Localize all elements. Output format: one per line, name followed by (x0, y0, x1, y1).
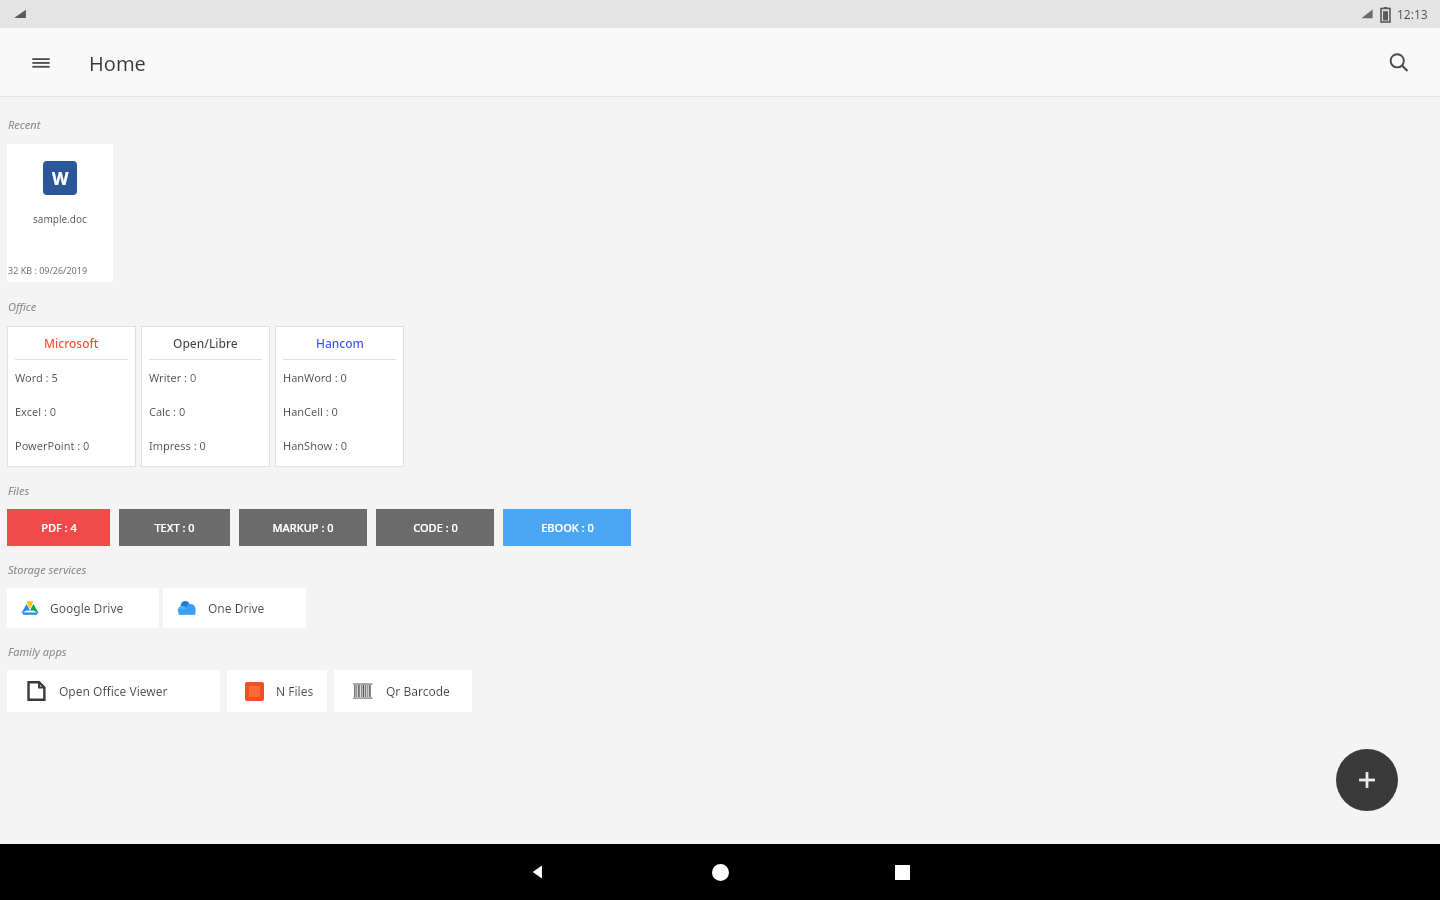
staticText: Office (8, 299, 37, 314)
staticText: Calc : 0 (149, 404, 186, 419)
button[interactable]: Recents (812, 844, 992, 900)
button[interactable]: Search (1376, 40, 1422, 86)
button[interactable]: W (7, 144, 113, 282)
staticText: Recent (8, 117, 41, 132)
button[interactable]: TEXT : 0 (119, 509, 230, 546)
staticText: Open/Libre (173, 335, 238, 351)
button[interactable]: EBOOK : 0 (503, 509, 631, 546)
staticText: Impress : 0 (149, 438, 206, 453)
button[interactable]: MARKUP : 0 (239, 509, 367, 546)
staticText: TEXT : 0 (154, 520, 195, 535)
button[interactable]: Google Drive (7, 588, 159, 628)
staticText: Open Office Viewer (59, 683, 168, 699)
staticText: HanWord : 0 (283, 370, 347, 385)
staticText: N Files (276, 683, 314, 699)
button[interactable]: PDF : 4 (7, 509, 110, 546)
button[interactable]: Back (448, 844, 628, 900)
button[interactable]: Hancom (275, 326, 404, 467)
staticText: 32 KB : 09/26/2019 (8, 264, 88, 276)
staticText: CODE : 0 (413, 520, 458, 535)
button[interactable]: One Drive (163, 588, 306, 628)
staticText: W (52, 167, 69, 189)
staticText: 12:13 (1397, 6, 1428, 22)
staticText: PDF : 4 (41, 520, 77, 535)
staticText: Family apps (8, 644, 67, 659)
button[interactable]: Qr Barcode (334, 670, 472, 712)
staticText: Excel : 0 (15, 404, 56, 419)
button[interactable]: Open Office Viewer (7, 670, 220, 712)
button[interactable]: Add (1336, 749, 1398, 811)
staticText: EBOOK : 0 (541, 520, 594, 535)
staticText: Files (8, 483, 30, 498)
button[interactable]: Open/Libre (141, 326, 270, 467)
staticText: Hancom (316, 335, 364, 351)
button[interactable]: Microsoft (7, 326, 136, 467)
staticText: PowerPoint : 0 (15, 438, 90, 453)
staticText: Storage services (8, 562, 87, 577)
button[interactable]: Home (630, 844, 810, 900)
staticText: HanShow : 0 (283, 438, 347, 453)
staticText: Word : 5 (15, 370, 58, 385)
staticText: Home (89, 50, 146, 77)
staticText: One Drive (208, 600, 265, 616)
staticText: MARKUP : 0 (272, 520, 334, 535)
button[interactable]: N Files (227, 670, 327, 712)
staticText: Writer : 0 (149, 370, 197, 385)
button[interactable]: Menu (18, 40, 64, 86)
staticText: HanCell : 0 (283, 404, 338, 419)
staticText: Google Drive (50, 600, 124, 616)
staticText: Microsoft (44, 335, 99, 351)
staticText: sample.doc (33, 212, 87, 226)
staticText: Qr Barcode (386, 683, 450, 699)
button[interactable]: CODE : 0 (376, 509, 494, 546)
